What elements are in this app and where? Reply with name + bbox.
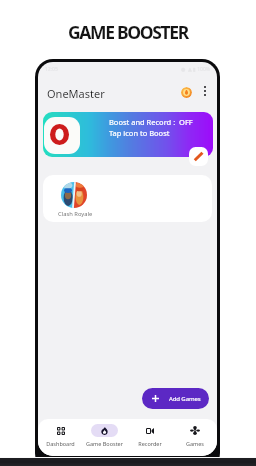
button[interactable]: Recorder — [127, 424, 172, 447]
staticText: ● ▲ ▮ 100% — [181, 66, 210, 73]
staticText: Game Booster — [86, 440, 123, 447]
staticText: Clash Royale — [58, 210, 93, 218]
staticText: OneMaster — [47, 86, 105, 101]
button[interactable]: Edit — [189, 147, 208, 166]
button[interactable]: Games — [172, 424, 217, 447]
button[interactable]: Boost — [181, 87, 192, 98]
staticText: Games — [186, 440, 204, 447]
button[interactable]: Game Booster — [82, 424, 127, 447]
staticText: Dashboard — [46, 440, 75, 447]
staticText: Boost and Record : OFF — [109, 117, 193, 127]
button[interactable]: Boost and Record : OFF — [43, 112, 213, 157]
staticText: 12:05 — [45, 66, 58, 73]
staticText: Tap icon to Boost — [109, 128, 170, 138]
button[interactable]: Add Games — [142, 388, 209, 409]
staticText: Recorder — [138, 440, 162, 447]
staticText: GAME BOOSTER — [68, 20, 188, 44]
button[interactable]: Clash Royale — [56, 182, 91, 218]
button[interactable]: Dashboard — [38, 424, 82, 447]
staticText: Add Games — [169, 395, 201, 403]
button[interactable]: More options — [199, 85, 211, 97]
